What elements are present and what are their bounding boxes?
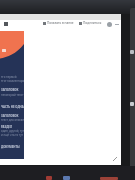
button[interactable]: ЗАГОЛОВОК <box>1 114 24 118</box>
button[interactable]: Taskbar item 3 <box>100 177 118 180</box>
staticText: ДОКУМЕНТЫ <box>1 145 20 149</box>
button[interactable]: Taskbar item 1 <box>46 176 52 180</box>
staticText: текст для описания <box>1 118 24 122</box>
button[interactable]: один, другой, тут <box>1 129 24 133</box>
button[interactable]: текст для описания <box>1 118 24 122</box>
button[interactable]: Поделиться <box>79 21 102 25</box>
button[interactable]: этот комментарий <box>1 79 24 83</box>
staticText: РАЗДЕЛ <box>1 125 12 129</box>
staticText: Поделиться <box>83 21 102 25</box>
button[interactable]: РАЗДЕЛ <box>1 125 24 129</box>
button[interactable]: Taskbar item 2 <box>63 176 70 180</box>
button[interactable]: Показать в папке <box>43 21 74 25</box>
staticText: это первый <box>1 75 17 79</box>
button[interactable]: некоторый текст <box>1 93 24 97</box>
staticText: некоторый текст <box>1 93 24 97</box>
staticText: этот комментарий <box>1 79 24 83</box>
button[interactable]: Desktop icon 2 <box>130 102 134 106</box>
button[interactable]: ЗАГОЛОВОК <box>1 88 24 92</box>
staticText: Показать в папке <box>47 21 74 25</box>
button[interactable]: и ещё что-то тут <box>1 133 24 137</box>
button[interactable]: ЧАСТЬ НЕ ОДНА <box>1 105 24 109</box>
staticText: и ещё что-то тут <box>1 133 23 137</box>
button[interactable]: Desktop icon <box>130 50 134 54</box>
staticText: ЗАГОЛОВОК <box>1 114 19 118</box>
staticText: ЗАГОЛОВОК <box>1 88 19 92</box>
staticText: один, другой, тут <box>1 129 24 133</box>
staticText: ЧАСТЬ НЕ ОДНА <box>1 105 24 109</box>
button[interactable]: ДОКУМЕНТЫ <box>1 145 24 149</box>
button[interactable]: Account <box>107 22 112 27</box>
button[interactable]: это первый <box>1 75 24 79</box>
